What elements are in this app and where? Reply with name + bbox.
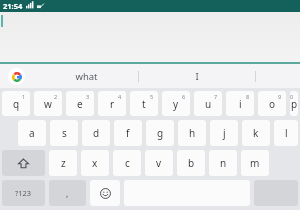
staticText: ?123	[15, 188, 32, 198]
staticText: e	[77, 97, 83, 111]
staticText: z	[61, 156, 66, 170]
button[interactable]: b	[177, 150, 205, 176]
button[interactable]: a	[18, 120, 46, 146]
staticText: j	[223, 126, 226, 140]
staticText: s	[62, 126, 67, 140]
button[interactable]	[0, 12, 300, 62]
staticText: d	[93, 126, 100, 140]
staticText: I	[195, 70, 199, 83]
button[interactable]: g	[146, 120, 174, 146]
button[interactable]: l	[274, 120, 298, 146]
button[interactable]: o	[258, 91, 286, 116]
staticText: 7	[214, 93, 218, 100]
button[interactable]: z	[49, 150, 77, 176]
button[interactable]: ?123	[2, 180, 45, 206]
button[interactable]: j	[210, 120, 238, 146]
button[interactable]: Google search	[8, 68, 25, 85]
staticText: 6	[182, 93, 186, 100]
staticText: h	[189, 126, 196, 140]
staticText: ,	[66, 187, 69, 199]
button[interactable]: h	[178, 120, 206, 146]
button[interactable]: n	[209, 150, 237, 176]
staticText: a	[29, 126, 35, 140]
staticText: v	[156, 156, 162, 170]
staticText: 8	[246, 93, 250, 100]
staticText: 2	[54, 93, 58, 100]
button[interactable]: k	[242, 120, 270, 146]
staticText: 4	[118, 93, 122, 100]
staticText: y	[173, 97, 179, 111]
button[interactable]: i	[226, 91, 254, 116]
button[interactable]: c	[113, 150, 141, 176]
staticText: u	[205, 97, 212, 111]
staticText: k	[253, 126, 259, 140]
button[interactable]: w	[34, 91, 62, 116]
staticText: 5	[150, 93, 154, 100]
staticText: q	[13, 97, 20, 111]
button[interactable]: x	[81, 150, 109, 176]
staticText: o	[269, 97, 276, 111]
staticText: l	[285, 126, 288, 140]
button[interactable]: f	[114, 120, 142, 146]
button[interactable]: q	[2, 91, 30, 116]
button[interactable]: e	[66, 91, 94, 116]
staticText: c	[125, 156, 130, 170]
staticText: i	[239, 97, 242, 111]
button[interactable]: I	[139, 64, 255, 88]
staticText: b	[188, 156, 195, 170]
staticText: t	[142, 97, 146, 111]
staticText: n	[220, 156, 227, 170]
button[interactable]: m	[241, 150, 269, 176]
staticText: w	[44, 97, 52, 111]
button[interactable]: r	[98, 91, 126, 116]
button[interactable]: y	[162, 91, 190, 116]
button[interactable]: Emoji	[90, 180, 120, 206]
staticText: f	[126, 126, 130, 140]
staticText: m	[250, 156, 260, 170]
button[interactable]: v	[145, 150, 173, 176]
button[interactable]: p	[290, 91, 298, 116]
staticText: g	[157, 126, 164, 140]
staticText: 0	[290, 93, 294, 100]
staticText: p	[291, 97, 298, 111]
button[interactable]: t	[130, 91, 158, 116]
button[interactable]: Shift	[2, 150, 45, 176]
staticText: 3	[86, 93, 90, 100]
staticText: x	[92, 156, 98, 170]
button[interactable]: s	[50, 120, 78, 146]
button[interactable]: ,	[49, 180, 86, 206]
button[interactable]: u	[194, 91, 222, 116]
staticText: 9	[278, 93, 282, 100]
staticText: r	[110, 97, 115, 111]
staticText: 1	[22, 93, 26, 100]
staticText: what	[75, 70, 98, 83]
button[interactable]: what	[34, 64, 138, 88]
button[interactable]: d	[82, 120, 110, 146]
staticText: 21:54	[3, 1, 23, 11]
